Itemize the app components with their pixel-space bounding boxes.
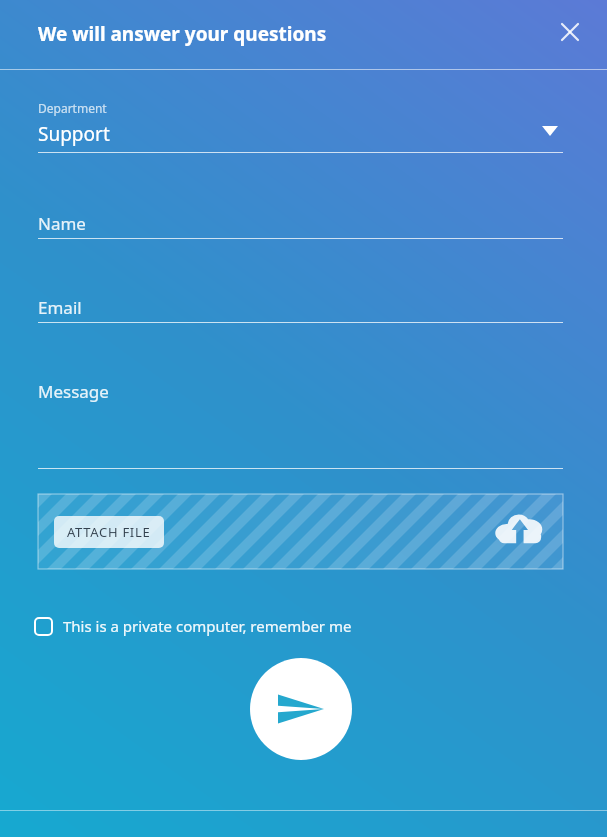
button[interactable]: Department — [38, 98, 563, 154]
button[interactable]: This is a private computer, remember me — [34, 610, 352, 642]
staticText: Message — [38, 380, 109, 403]
staticText: This is a private computer, remember me — [63, 616, 352, 636]
button[interactable]: Message — [38, 374, 563, 470]
button[interactable]: Name — [38, 206, 563, 240]
button[interactable]: Send — [250, 658, 352, 760]
staticText: Email — [38, 296, 82, 319]
staticText: ATTACH FILE — [67, 523, 151, 541]
button[interactable]: ATTACH FILE — [54, 516, 164, 548]
button[interactable]: Close — [548, 10, 592, 54]
button[interactable]: Email — [38, 290, 563, 324]
staticText: Name — [38, 212, 86, 235]
button[interactable]: ATTACH FILE — [38, 494, 563, 569]
other: Upload — [493, 512, 549, 552]
staticText: Support — [38, 121, 110, 147]
staticText: We will answer your questions — [38, 21, 327, 47]
staticText: Department — [38, 100, 107, 116]
